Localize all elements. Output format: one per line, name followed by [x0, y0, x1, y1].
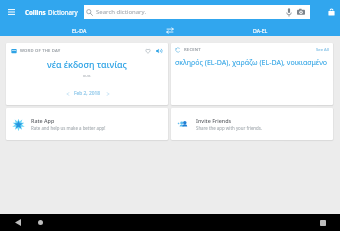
- staticText: Rate App: [31, 117, 55, 124]
- button[interactable]: Pronounce word: [155, 47, 163, 55]
- button[interactable]: σκληρός (EL-DA), χαράζω (EL-DA), νοικιασ…: [175, 57, 328, 67]
- button[interactable]: Next day: [103, 89, 112, 98]
- button[interactable]: DA-EL: [181, 24, 340, 36]
- staticText: Collins: [25, 8, 46, 16]
- staticText: RECENT: [184, 47, 201, 53]
- button[interactable]: EL-DA: [0, 24, 159, 36]
- button[interactable]: Unlock premium: [310, 0, 340, 24]
- button[interactable]: Open navigation menu: [0, 0, 22, 24]
- staticText: Share the app with your friends.: [196, 125, 263, 131]
- staticText: See All: [316, 47, 329, 53]
- button[interactable]: Swap languages: [159, 24, 181, 36]
- button[interactable]: Home: [33, 215, 48, 230]
- button[interactable]: Camera search: [296, 7, 306, 17]
- button[interactable]: Recent apps: [315, 215, 330, 230]
- button[interactable]: See All: [315, 47, 330, 53]
- button[interactable]: νέα έκδοση ταινίας: [11, 59, 163, 71]
- staticText: WORD OF THE DAY: [20, 48, 61, 54]
- staticText: Invite Friends: [196, 117, 232, 124]
- button[interactable]: Previous day: [63, 89, 72, 98]
- staticText: Rate and help us make a better app!: [31, 125, 106, 131]
- staticText: DA-EL: [253, 27, 268, 34]
- button[interactable]: Collins: [25, 8, 78, 16]
- button[interactable]: Add to favourites: [144, 47, 152, 55]
- button[interactable]: Voice search: [284, 7, 294, 17]
- button[interactable]: Back: [10, 215, 25, 230]
- staticText: Feb 2, 2018: [74, 90, 101, 97]
- staticText: Dictionary: [48, 8, 78, 16]
- staticText: EL-DA: [72, 27, 87, 34]
- button[interactable]: Rate App: [6, 108, 168, 140]
- button[interactable]: Search dictionary.: [84, 5, 310, 19]
- staticText: ουσ.: [11, 73, 163, 79]
- button[interactable]: Invite Friends: [171, 108, 333, 140]
- staticText: Search dictionary.: [96, 8, 146, 16]
